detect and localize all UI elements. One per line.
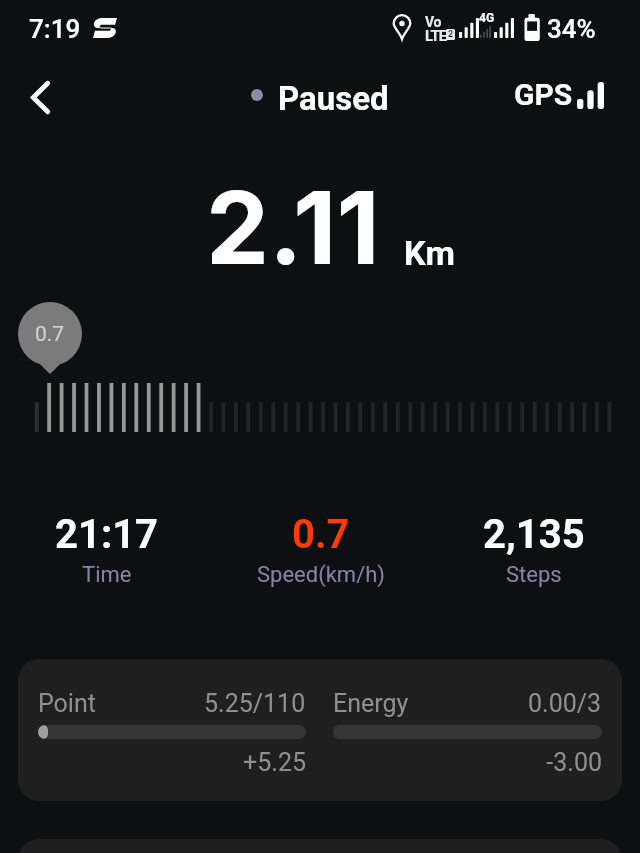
button[interactable]: 2,135 [427,509,640,590]
staticText: Speed(km/h) [257,562,385,588]
button[interactable]: Energy [333,689,602,801]
staticText: 2,135 [483,511,585,558]
staticText: Paused [278,79,389,118]
staticText: 34% [547,14,596,44]
staticText: 2.11 [206,167,380,288]
staticText: Energy [333,689,409,718]
button[interactable]: Back [16,73,64,121]
staticText: 2 [448,29,454,40]
staticText: Steps [506,562,562,588]
staticText: GPS [514,77,573,112]
staticText: 4G [479,11,495,25]
staticText: 21:17 [55,511,159,558]
button[interactable]: 21:17 [0,509,214,590]
staticText: Km [404,233,455,273]
staticText: LTE [425,27,447,45]
button[interactable]: GPS [505,72,615,120]
staticText: Point [38,689,96,718]
staticText: 0.00/3 [528,689,602,718]
button[interactable]: Point [38,689,306,801]
staticText: +5.25 [38,748,306,777]
button[interactable]: 0.7 [214,509,427,590]
staticText: 5.25/110 [204,689,306,718]
staticText: -3.00 [333,748,602,777]
staticText: Vo [425,14,441,30]
staticText: 0.7 [292,511,350,558]
staticText: 7:19 [29,14,81,44]
staticText: Time [82,562,132,588]
staticText: 0.7 [35,322,65,347]
